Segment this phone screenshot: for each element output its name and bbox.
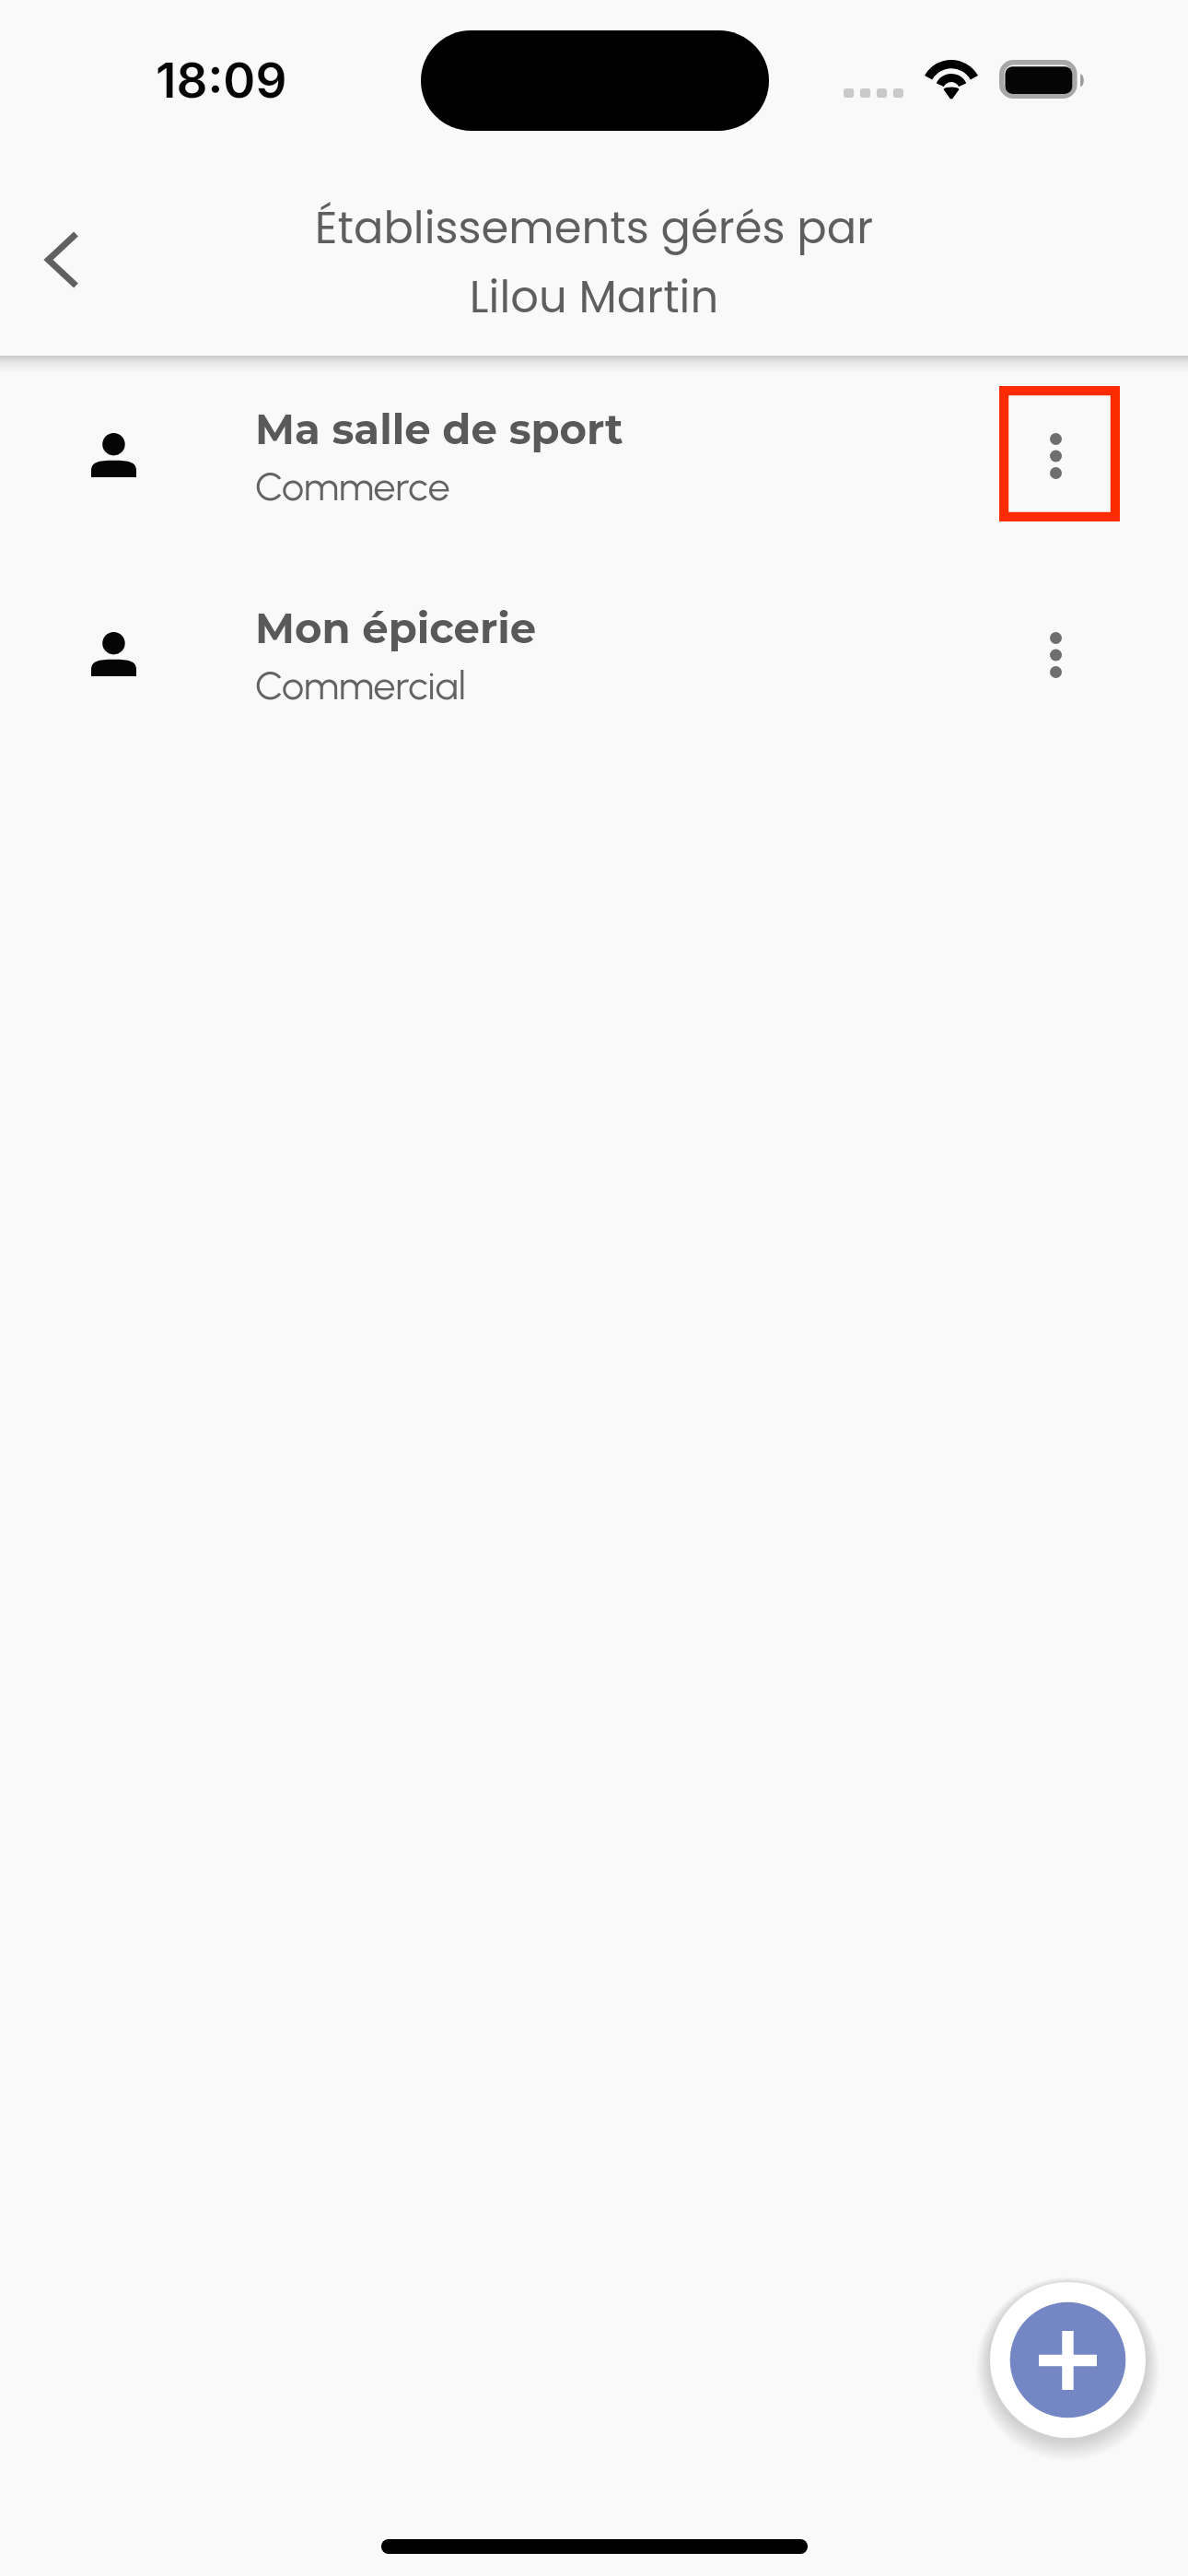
button[interactable]: Mon épicerie <box>0 585 1188 784</box>
staticText: Commerce <box>255 463 450 509</box>
button[interactable]: Ma salle de sport <box>0 386 1188 585</box>
staticText: Établissements gérés par <box>0 197 1188 259</box>
staticText: Lilou Martin <box>0 266 1188 328</box>
staticText: Mon épicerie <box>255 603 537 653</box>
button[interactable]: More options <box>1020 415 1091 497</box>
staticText: 18:09 <box>156 51 287 110</box>
button[interactable]: More options <box>1020 614 1091 696</box>
staticText: Ma salle de sport <box>255 404 623 454</box>
button[interactable]: Back <box>34 224 89 296</box>
staticText: Commercial <box>255 662 466 708</box>
